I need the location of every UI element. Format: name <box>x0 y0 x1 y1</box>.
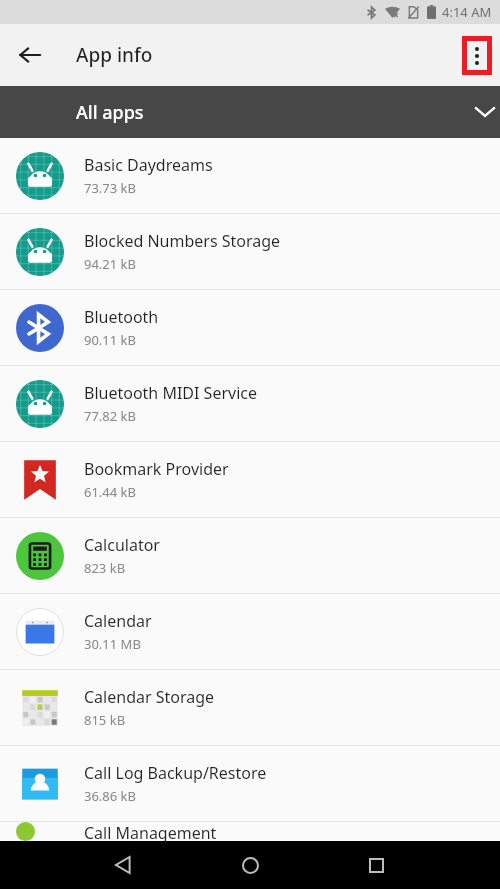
button[interactable]: Calendar Storage <box>0 670 500 746</box>
button[interactable]: Blocked Numbers Storage <box>0 214 500 290</box>
button[interactable]: Basic Daydreams <box>0 138 500 214</box>
staticText: Blocked Numbers Storage <box>84 230 281 252</box>
button[interactable]: All apps <box>0 86 500 138</box>
button[interactable]: Call Management <box>0 822 500 841</box>
staticText: Basic Daydreams <box>84 154 213 176</box>
staticText: 823 kB <box>84 559 126 577</box>
staticText: 815 kB <box>84 711 126 729</box>
staticText: All apps <box>76 100 144 125</box>
staticText: Call Log Backup/Restore <box>84 762 267 784</box>
button[interactable]: Back <box>100 841 148 889</box>
staticText: Bookmark Provider <box>84 458 229 480</box>
button[interactable]: More options <box>462 36 492 75</box>
staticText: Call Management <box>84 822 217 841</box>
staticText: Calendar <box>84 610 152 632</box>
button[interactable]: Recent apps <box>352 841 400 889</box>
staticText: 36.86 kB <box>84 787 137 805</box>
staticText: Bluetooth MIDI Service <box>84 382 257 404</box>
button[interactable]: Bookmark Provider <box>0 442 500 518</box>
staticText: 73.73 kB <box>84 179 137 197</box>
staticText: 4:14 AM <box>442 3 492 21</box>
staticText: 94.21 kB <box>84 255 137 273</box>
staticText: Calendar Storage <box>84 686 215 708</box>
button[interactable]: Home <box>226 841 274 889</box>
staticText: 30.11 MB <box>84 635 141 653</box>
button[interactable]: Bluetooth MIDI Service <box>0 366 500 442</box>
button[interactable]: Bluetooth <box>0 290 500 366</box>
staticText: 90.11 kB <box>84 331 137 349</box>
staticText: 61.44 kB <box>84 483 137 501</box>
button[interactable]: Calculator <box>0 518 500 594</box>
button[interactable]: Calendar <box>0 594 500 670</box>
staticText: Calculator <box>84 534 160 556</box>
staticText: Bluetooth <box>84 306 159 328</box>
button[interactable]: Back <box>8 33 52 77</box>
staticText: 77.82 kB <box>84 407 137 425</box>
button[interactable]: Call Log Backup/Restore <box>0 746 500 822</box>
staticText: App info <box>76 42 153 68</box>
